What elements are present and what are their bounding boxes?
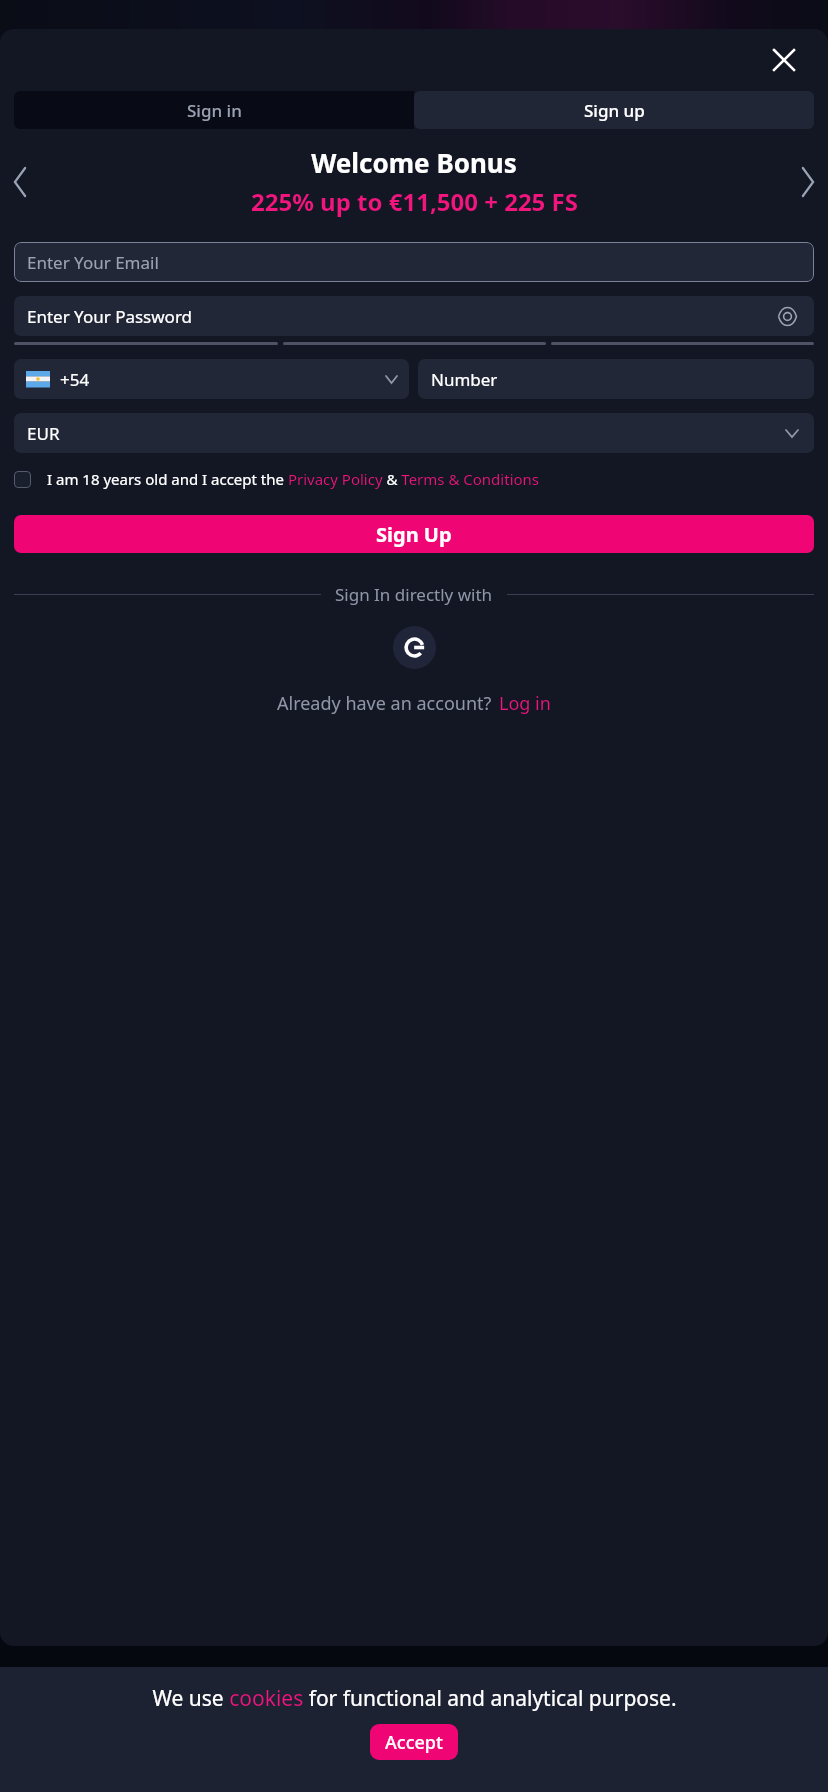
button[interactable]: Number: [418, 359, 814, 399]
button[interactable]: Next bonus: [788, 162, 828, 202]
button[interactable]: Sign up: [414, 91, 814, 129]
staticText: Sign in: [187, 99, 242, 122]
button[interactable]: Show password: [772, 301, 802, 331]
button[interactable]: Log in: [499, 691, 551, 716]
staticText: Welcome Bonus: [311, 145, 517, 180]
button[interactable]: Sign in: [14, 91, 414, 129]
staticText: +54: [60, 368, 90, 391]
button[interactable]: Sign in with Google: [393, 626, 436, 669]
button[interactable]: Enter Your Email: [14, 242, 814, 282]
staticText: Enter Your Password: [27, 305, 193, 328]
button[interactable]: Accept: [370, 1724, 458, 1760]
staticText: Accept: [385, 1730, 443, 1755]
staticText: 225% up to €11,500 + 225 FS: [251, 185, 578, 218]
staticText: I am 18 years old and I accept the Priva…: [47, 469, 540, 489]
staticText: Sign up: [584, 99, 645, 122]
button[interactable]: Previous bonus: [0, 162, 40, 202]
button[interactable]: Enter Your Password: [14, 296, 814, 336]
button[interactable]: I am 18 years old and I accept the Priva…: [14, 469, 814, 489]
staticText: We use cookies for functional and analyt…: [152, 1684, 677, 1713]
staticText: Sign In directly with: [335, 583, 493, 606]
staticText: Enter Your Email: [27, 251, 159, 274]
button[interactable]: +54: [14, 359, 409, 399]
staticText: Log in: [499, 691, 551, 716]
button[interactable]: Close: [762, 38, 806, 82]
button[interactable]: Sign Up: [14, 515, 814, 553]
staticText: Sign Up: [376, 521, 452, 548]
button[interactable]: EUR: [14, 413, 814, 453]
staticText: Already have an account?: [277, 691, 492, 716]
staticText: EUR: [27, 422, 60, 445]
staticText: Number: [431, 368, 498, 391]
